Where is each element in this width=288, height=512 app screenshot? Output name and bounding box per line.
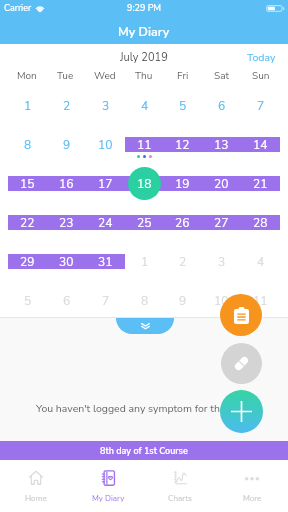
button[interactable]: 6 [202, 86, 241, 125]
button[interactable]: 28 [241, 203, 280, 242]
button[interactable]: 16 [47, 164, 86, 203]
staticText: Fri [177, 69, 189, 83]
staticText: 4 [141, 98, 149, 114]
button[interactable]: More [216, 460, 288, 512]
button[interactable]: 8 [8, 125, 47, 164]
button[interactable]: Log medication [221, 343, 262, 384]
button[interactable]: 26 [163, 203, 202, 242]
staticText: Sat [214, 69, 229, 83]
button[interactable]: 11 [125, 125, 164, 164]
staticText: Tue [57, 69, 74, 83]
staticText: Today [247, 50, 276, 64]
button[interactable]: 2 [163, 242, 202, 281]
button[interactable]: Add entry [220, 390, 263, 433]
staticText: 9 [179, 293, 187, 309]
staticText: 2 [63, 98, 71, 114]
staticText: 9 [63, 137, 71, 153]
button[interactable]: Charts [144, 460, 216, 512]
staticText: You haven't logged any symptom for the d… [36, 401, 248, 415]
button[interactable]: Home [0, 460, 72, 512]
staticText: 17 [98, 176, 113, 192]
staticText: 8 [141, 293, 149, 309]
staticText: 24 [98, 215, 113, 231]
staticText: 10 [98, 137, 113, 153]
button[interactable]: 10 [202, 281, 241, 320]
button[interactable]: 29 [8, 242, 47, 281]
staticText: 8th day of 1st Course [100, 445, 188, 457]
button[interactable]: 5 [163, 86, 202, 125]
button[interactable]: 3 [86, 86, 125, 125]
button[interactable]: 23 [47, 203, 86, 242]
staticText: 11 [253, 293, 268, 309]
button[interactable]: 3 [202, 242, 241, 281]
staticText: 31 [98, 254, 113, 270]
staticText: 5 [179, 98, 187, 114]
staticText: 5 [24, 293, 32, 309]
staticText: 16 [59, 176, 74, 192]
button[interactable]: Log symptom [220, 294, 262, 336]
button[interactable]: 6 [47, 281, 86, 320]
staticText: 3 [218, 254, 226, 270]
staticText: 25 [137, 215, 152, 231]
staticText: My Diary [92, 493, 125, 504]
staticText: My Diary [118, 23, 170, 40]
staticText: 15 [20, 176, 35, 192]
button[interactable]: 2 [47, 86, 86, 125]
staticText: 12 [175, 137, 190, 153]
staticText: 18 [137, 176, 152, 192]
button[interactable]: 21 [241, 164, 280, 203]
button[interactable]: 25 [125, 203, 164, 242]
staticText: 7 [102, 293, 110, 309]
staticText: 11 [137, 137, 152, 153]
staticText: 8 [24, 137, 32, 153]
staticText: 27 [214, 215, 229, 231]
button[interactable]: 5 [8, 281, 47, 320]
staticText: Home [25, 493, 47, 504]
button[interactable]: 1 [8, 86, 47, 125]
button[interactable]: 19 [163, 164, 202, 203]
button[interactable]: 30 [47, 242, 86, 281]
staticText: 9:29 PM [127, 2, 162, 14]
button[interactable]: 20 [202, 164, 241, 203]
staticText: 6 [218, 98, 226, 114]
staticText: 22 [20, 215, 35, 231]
button[interactable]: 7 [86, 281, 125, 320]
button[interactable]: 24 [86, 203, 125, 242]
button[interactable]: 17 [86, 164, 125, 203]
button[interactable]: 10 [86, 125, 125, 164]
button[interactable]: 9 [47, 125, 86, 164]
button[interactable]: 8th day of 1st Course [0, 441, 288, 460]
staticText: 28 [253, 215, 268, 231]
button[interactable]: 18 [125, 164, 164, 203]
staticText: Charts [168, 493, 192, 504]
button[interactable]: 4 [241, 242, 280, 281]
button[interactable]: 8 [125, 281, 164, 320]
staticText: 1 [141, 254, 149, 270]
staticText: 19 [175, 176, 190, 192]
staticText: Sun [252, 69, 270, 83]
button[interactable]: Today [241, 47, 288, 67]
staticText: 21 [253, 176, 268, 192]
button[interactable]: 11 [241, 281, 280, 320]
staticText: More [243, 493, 262, 504]
staticText: Wed [94, 69, 116, 83]
button[interactable]: My Diary [72, 460, 144, 512]
button[interactable]: 4 [125, 86, 164, 125]
button[interactable]: 1 [125, 242, 164, 281]
staticText: 3 [102, 98, 110, 114]
button[interactable]: 13 [202, 125, 241, 164]
button[interactable]: 14 [241, 125, 280, 164]
button[interactable]: 27 [202, 203, 241, 242]
button[interactable]: 31 [86, 242, 125, 281]
button[interactable]: 22 [8, 203, 47, 242]
button[interactable]: 15 [8, 164, 47, 203]
staticText: 29 [20, 254, 35, 270]
staticText: 30 [59, 254, 74, 270]
button[interactable]: Expand calendar [116, 318, 174, 334]
staticText: 14 [253, 137, 268, 153]
button[interactable]: 12 [163, 125, 202, 164]
button[interactable]: 7 [241, 86, 280, 125]
button[interactable]: 9 [163, 281, 202, 320]
staticText: 13 [214, 137, 229, 153]
staticText: 26 [175, 215, 190, 231]
